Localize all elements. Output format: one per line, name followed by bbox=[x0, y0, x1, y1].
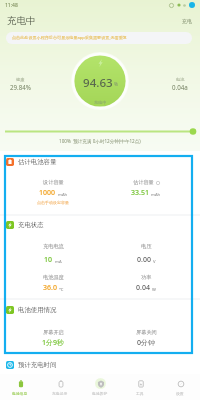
staticText: 预计充电时间 bbox=[18, 361, 57, 369]
staticText: 0.04a bbox=[172, 83, 188, 91]
staticText: 1000 bbox=[39, 188, 56, 198]
staticText: 充电电流 bbox=[43, 243, 64, 250]
button[interactable]: 充电状态 bbox=[0, 217, 200, 232]
staticText: 1分9秒 bbox=[42, 338, 65, 348]
button[interactable]: 预计充电时间 bbox=[0, 357, 200, 372]
staticText: 点击此处设置小程序后台可显示电量app采集需要设置,无需重复 bbox=[12, 35, 127, 41]
staticText: 充电状态 bbox=[18, 221, 44, 229]
staticText: 充电 bbox=[182, 18, 192, 24]
staticText: 36.0 bbox=[43, 283, 57, 293]
staticText: 估计电池容量 bbox=[18, 158, 57, 166]
staticText: 功率 bbox=[141, 274, 152, 281]
staticText: 估计容量 bbox=[133, 179, 154, 186]
button[interactable]: 充电记录 bbox=[40, 378, 80, 396]
staticText: 屏幕开启 bbox=[43, 329, 64, 336]
staticText: 充电中 bbox=[7, 15, 36, 27]
staticText: ℃ bbox=[59, 287, 64, 293]
staticText: 健康 bbox=[16, 77, 25, 82]
staticText: 11:48 bbox=[5, 2, 18, 9]
button[interactable]: 充电 bbox=[180, 16, 194, 26]
staticText: mAh bbox=[151, 192, 161, 198]
button[interactable]: 设置 bbox=[160, 378, 200, 396]
staticText: 0分钟 bbox=[137, 338, 156, 348]
staticText: 33.51 bbox=[131, 188, 149, 198]
staticText: 充电记录 bbox=[52, 391, 68, 396]
button[interactable]: 电池信息 bbox=[0, 378, 40, 396]
staticText: 29.84% bbox=[10, 83, 31, 91]
staticText: mAh bbox=[58, 192, 68, 198]
staticText: 0.04 bbox=[136, 283, 150, 293]
button[interactable]: 工具 bbox=[120, 378, 160, 396]
staticText: 电压 bbox=[141, 243, 152, 250]
button[interactable]: 电池养护 bbox=[80, 378, 120, 396]
staticText: 电池养护 bbox=[92, 391, 108, 396]
staticText: V bbox=[153, 259, 156, 265]
staticText: mA bbox=[55, 259, 62, 265]
button[interactable]: 估计电池容量 bbox=[0, 154, 200, 169]
staticText: 屏幕关闭 bbox=[136, 329, 157, 336]
staticText: 电池信息 bbox=[12, 391, 28, 396]
staticText: 10 bbox=[44, 255, 53, 265]
staticText: 电池温度 bbox=[43, 274, 64, 281]
staticText: W bbox=[152, 287, 156, 293]
staticText: 设置 bbox=[176, 391, 184, 396]
staticText: 设计容量 bbox=[43, 179, 64, 186]
staticText: 充电中 bbox=[94, 100, 107, 105]
staticText: % bbox=[114, 81, 118, 88]
staticText: 0.00 bbox=[137, 255, 151, 265]
button[interactable]: 电池使用情况 bbox=[0, 302, 200, 317]
staticText: 电流 bbox=[176, 77, 185, 82]
staticText: 工具 bbox=[136, 391, 144, 396]
staticText: 94.63 bbox=[83, 75, 113, 89]
staticText: 点击手动设定容量 bbox=[37, 200, 69, 205]
button[interactable]: 点击此处设置小程序后台可显示电量app采集需要设置,无需重复 bbox=[6, 32, 192, 44]
staticText: 电池使用情况 bbox=[18, 306, 57, 314]
staticText: 100% 预计充满 0小时12分钟(中午12点) bbox=[59, 138, 141, 144]
